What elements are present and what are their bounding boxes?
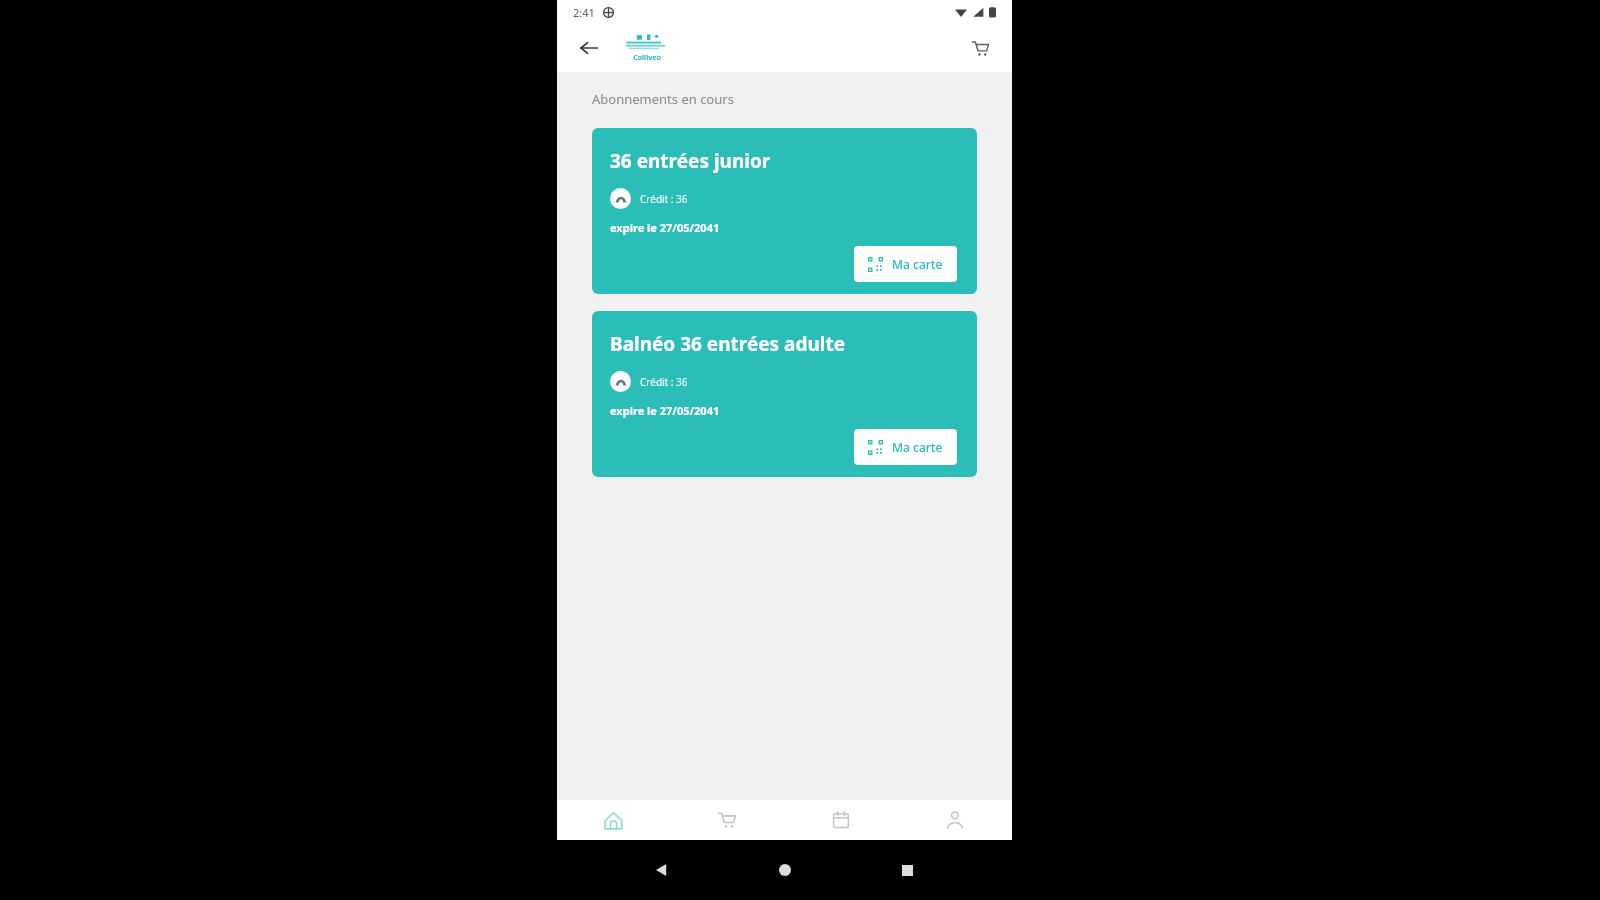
staticText: Balnéo 36 entrées adulte bbox=[610, 331, 846, 357]
button[interactable]: Ma carte bbox=[854, 246, 957, 282]
staticText: expire le 27/05/2041 bbox=[610, 220, 720, 235]
button[interactable]: Bookings bbox=[784, 800, 898, 840]
button[interactable]: Back bbox=[569, 28, 609, 68]
staticText: expire le 27/05/2041 bbox=[610, 403, 720, 418]
button[interactable]: Balnéo 36 entrées adulte bbox=[592, 311, 977, 477]
button[interactable]: Ma carte bbox=[854, 429, 957, 465]
staticText: Crédit : 36 bbox=[640, 192, 688, 206]
button[interactable]: Recents bbox=[889, 852, 925, 888]
staticText: 36 entrées junior bbox=[610, 148, 771, 174]
staticText: Ma carte bbox=[892, 439, 943, 455]
staticText: Ma carte bbox=[892, 256, 943, 272]
staticText: Crédit : 36 bbox=[640, 375, 688, 389]
button[interactable]: 36 entrées junior bbox=[592, 128, 977, 294]
button[interactable]: Home bbox=[557, 800, 670, 840]
button[interactable]: Back bbox=[644, 852, 680, 888]
button[interactable]: Profile bbox=[898, 800, 1012, 840]
staticText: Colliveo bbox=[633, 53, 661, 63]
staticText: 2:41 bbox=[573, 5, 595, 20]
button[interactable]: Cart bbox=[960, 28, 1000, 68]
button[interactable]: Home bbox=[767, 852, 803, 888]
staticText: Abonnements en cours bbox=[592, 90, 734, 108]
button[interactable]: Cart bbox=[670, 800, 784, 840]
